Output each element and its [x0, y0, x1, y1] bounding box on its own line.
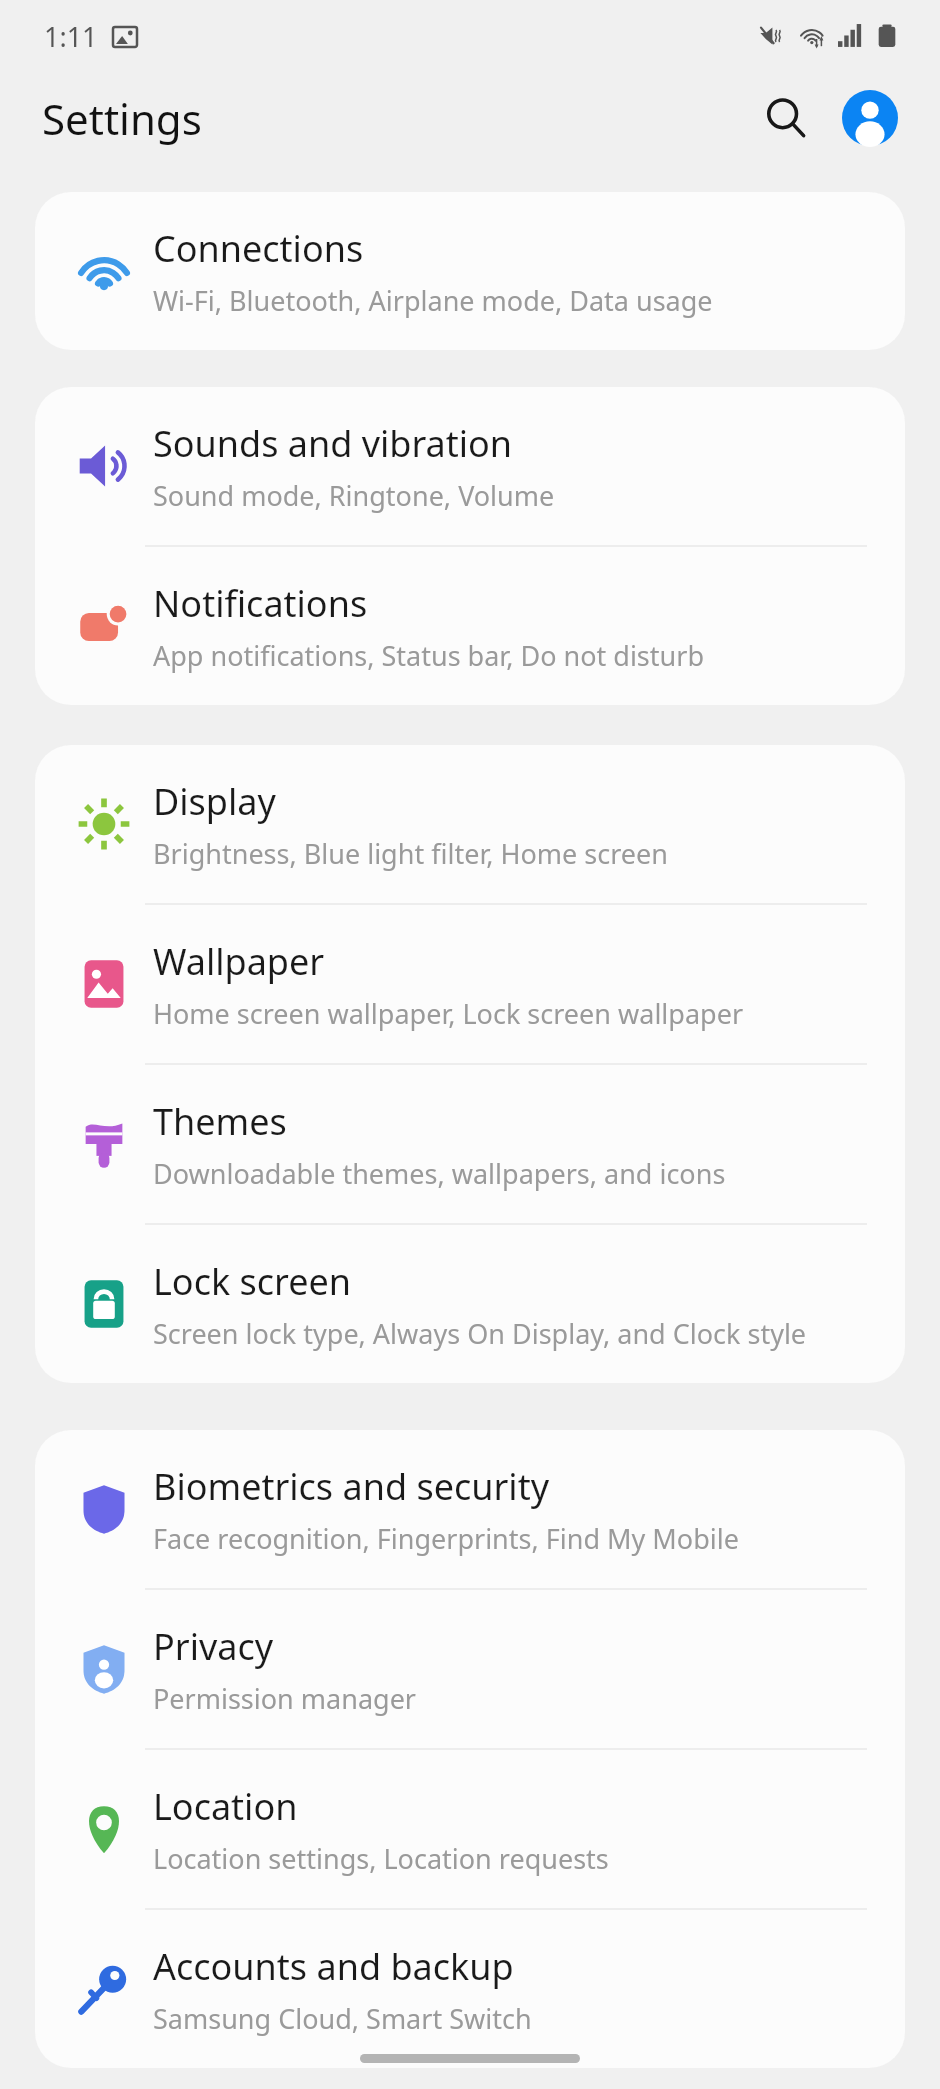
staticText: Notifications — [153, 579, 368, 628]
button[interactable]: Accounts and backup — [35, 1910, 905, 2068]
staticText: Home screen wallpaper, Lock screen wallp… — [153, 995, 744, 1032]
staticText: Brightness, Blue light filter, Home scre… — [153, 835, 668, 872]
staticText: Privacy — [153, 1622, 274, 1671]
staticText: Face recognition, Fingerprints, Find My … — [153, 1520, 739, 1557]
staticText: 1:11 — [44, 18, 98, 55]
staticText: Lock screen — [153, 1257, 352, 1306]
staticText: Biometrics and security — [153, 1462, 550, 1511]
button[interactable]: Lock screen — [35, 1225, 905, 1383]
button[interactable]: Search — [744, 76, 828, 160]
staticText: Samsung Cloud, Smart Switch — [153, 2000, 532, 2037]
button[interactable]: Wallpaper — [35, 905, 905, 1063]
staticText: Wi-Fi, Bluetooth, Airplane mode, Data us… — [153, 282, 713, 319]
staticText: Location settings, Location requests — [153, 1840, 609, 1877]
staticText: Display — [153, 777, 276, 826]
button[interactable]: Location — [35, 1750, 905, 1908]
staticText: Screen lock type, Always On Display, and… — [153, 1315, 807, 1352]
button[interactable]: Privacy — [35, 1590, 905, 1748]
button[interactable]: Sounds and vibration — [35, 387, 905, 545]
staticText: Themes — [153, 1097, 287, 1146]
staticText: Permission manager — [153, 1680, 417, 1717]
button[interactable]: Connections — [35, 192, 905, 350]
button[interactable]: Account — [828, 76, 912, 160]
staticText: Location — [153, 1782, 298, 1831]
staticText: App notifications, Status bar, Do not di… — [153, 637, 704, 674]
staticText: Sound mode, Ringtone, Volume — [153, 477, 555, 514]
button[interactable]: Themes — [35, 1065, 905, 1223]
staticText: Sounds and vibration — [153, 419, 513, 468]
staticText: Settings — [42, 90, 202, 147]
button[interactable]: Biometrics and security — [35, 1430, 905, 1588]
button[interactable]: Notifications — [35, 547, 905, 705]
staticText: Wallpaper — [153, 937, 325, 986]
button[interactable]: Display — [35, 745, 905, 903]
staticText: Downloadable themes, wallpapers, and ico… — [153, 1155, 726, 1192]
staticText: Connections — [153, 224, 364, 273]
staticText: Accounts and backup — [153, 1942, 514, 1991]
